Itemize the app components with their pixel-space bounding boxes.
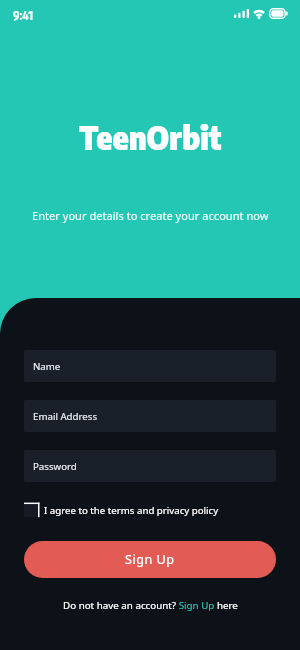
staticText: I agree to the terms and privacy policy bbox=[44, 504, 219, 517]
button[interactable]: Name bbox=[24, 350, 276, 382]
staticText: TeenOrbit bbox=[79, 117, 222, 158]
staticText: Name bbox=[33, 360, 61, 373]
button[interactable]: Email Address bbox=[24, 400, 276, 432]
staticText: Sign Up bbox=[125, 551, 175, 568]
button[interactable]: Do not have an account? Sign Up here bbox=[63, 599, 238, 612]
button[interactable]: Password bbox=[24, 450, 276, 482]
button[interactable]: I agree to the terms and privacy policy bbox=[24, 502, 276, 518]
staticText: Password bbox=[33, 460, 77, 473]
staticText: Email Address bbox=[33, 410, 98, 423]
staticText: Enter your details to create your accoun… bbox=[32, 208, 269, 223]
button[interactable]: Sign Up bbox=[24, 541, 276, 578]
staticText: 9:41 bbox=[13, 8, 34, 23]
